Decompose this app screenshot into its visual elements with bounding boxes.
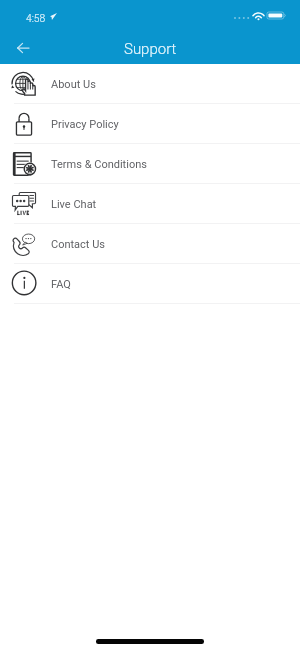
- staticText: Contact Us: [51, 238, 105, 251]
- button[interactable]: Contact Us: [0, 224, 300, 263]
- button[interactable]: About Us: [0, 64, 300, 103]
- staticText: 4:58: [26, 12, 46, 24]
- staticText: Privacy Policy: [51, 118, 119, 131]
- button[interactable]: Terms & Conditions: [0, 144, 300, 183]
- staticText: About Us: [51, 78, 96, 91]
- staticText: FAQ: [51, 278, 71, 291]
- staticText: Terms & Conditions: [51, 158, 147, 171]
- button[interactable]: Live Chat: [0, 184, 300, 223]
- button[interactable]: FAQ: [0, 264, 300, 303]
- staticText: Live Chat: [51, 198, 97, 211]
- staticText: Support: [124, 40, 177, 58]
- button[interactable]: Back: [5, 31, 40, 64]
- button[interactable]: Privacy Policy: [0, 104, 300, 143]
